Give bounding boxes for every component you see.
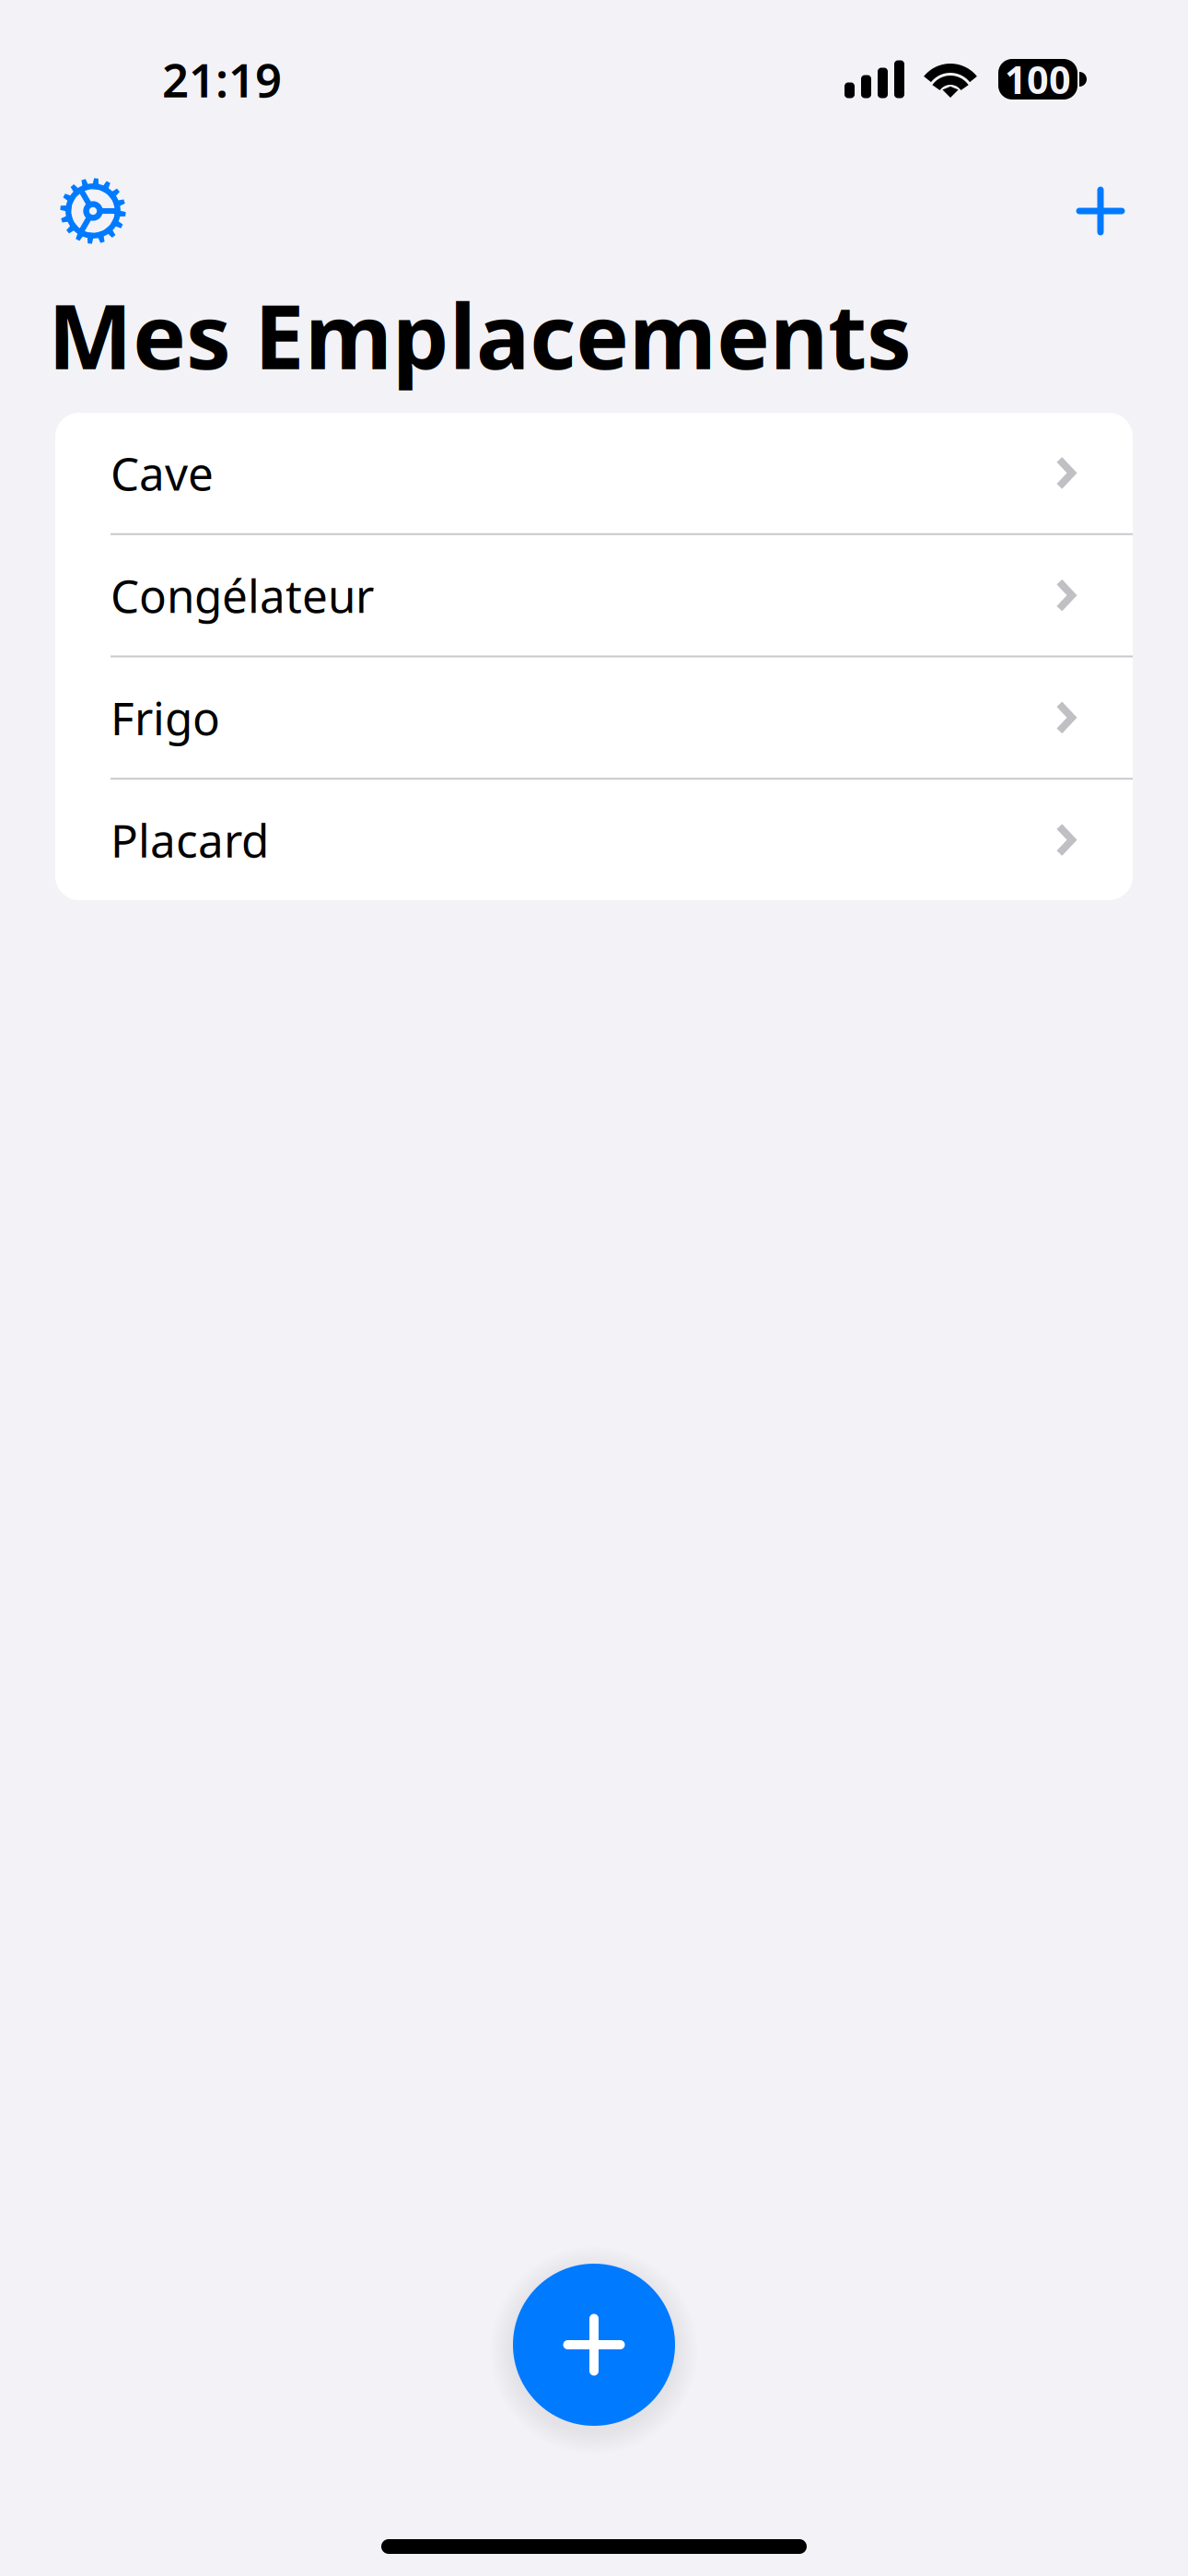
- staticText: Frigo: [111, 687, 220, 748]
- staticText: Mes Emplacements: [48, 275, 912, 394]
- staticText: Cave: [111, 443, 214, 503]
- button[interactable]: Congélateur: [55, 535, 1133, 656]
- staticText: 21:19: [162, 48, 282, 110]
- button[interactable]: Placard: [55, 780, 1133, 900]
- staticText: Placard: [111, 810, 269, 870]
- staticText: 100: [1005, 54, 1071, 105]
- button[interactable]: Add location: [1050, 163, 1151, 259]
- button[interactable]: Cave: [55, 413, 1133, 533]
- button[interactable]: Frigo: [55, 657, 1133, 778]
- button[interactable]: Settings: [42, 163, 144, 259]
- button[interactable]: Add: [490, 2241, 698, 2449]
- staticText: Congélateur: [111, 565, 374, 625]
